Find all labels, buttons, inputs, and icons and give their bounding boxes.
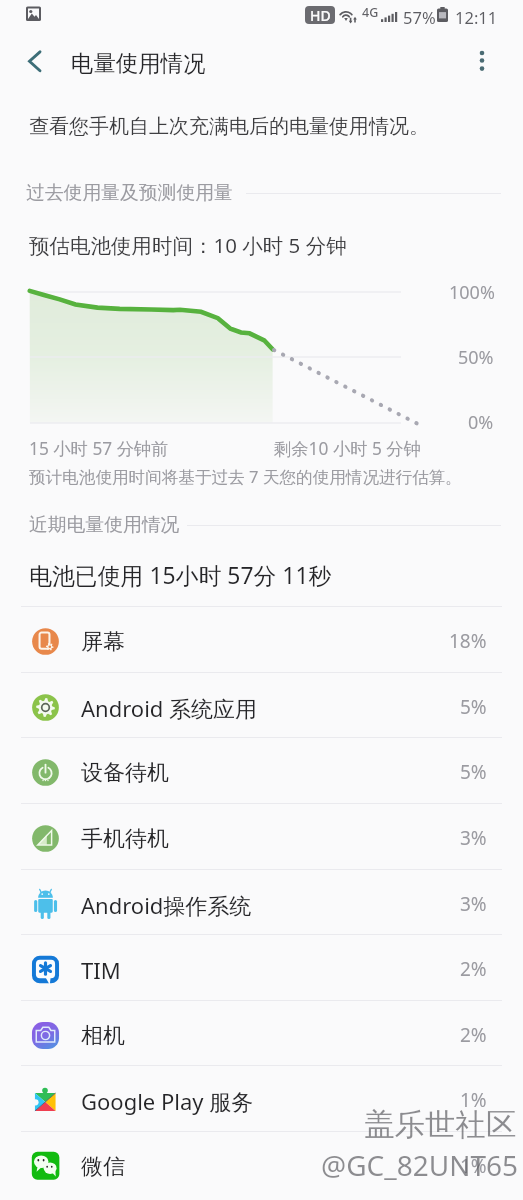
staticText: 电量使用情况 xyxy=(71,49,206,77)
staticText: 设备待机 xyxy=(81,759,169,787)
staticText: 盖乐世社区 xyxy=(364,1106,517,1144)
button[interactable]: 手机待机 xyxy=(0,803,523,869)
staticText: 剩余10 小时 5 分钟 xyxy=(274,437,421,461)
staticText: HD xyxy=(310,6,331,24)
button[interactable]: Back xyxy=(12,38,58,84)
staticText: 1% xyxy=(460,1153,487,1179)
staticText: 预估电池使用时间：10 小时 5 分钟 xyxy=(29,231,347,259)
staticText: 50% xyxy=(458,345,494,370)
staticText: 0% xyxy=(468,410,494,435)
staticText: 1% xyxy=(460,1087,487,1113)
button[interactable]: 相机 xyxy=(0,1000,523,1066)
button[interactable]: 设备待机 xyxy=(0,737,523,803)
staticText: 5% xyxy=(460,694,487,720)
staticText: 57% xyxy=(403,6,436,28)
staticText: 2% xyxy=(460,956,487,982)
staticText: Android 系统应用 xyxy=(81,693,258,723)
button[interactable]: Android 系统应用 xyxy=(0,672,523,738)
staticText: 预计电池使用时间将基于过去 7 天您的使用情况进行估算。 xyxy=(29,465,462,488)
staticText: 屏幕 xyxy=(81,628,125,656)
staticText: 18% xyxy=(449,628,487,654)
staticText: 12:11 xyxy=(455,6,498,28)
staticText: 15 小时 57 分钟前 xyxy=(29,437,169,461)
staticText: 2% xyxy=(460,1022,487,1048)
button[interactable]: Google Play 服务 xyxy=(0,1065,523,1131)
button[interactable]: TIM xyxy=(0,934,523,1000)
button[interactable]: Android操作系统 xyxy=(0,869,523,935)
staticText: 相机 xyxy=(81,1022,125,1050)
staticText: 100% xyxy=(449,280,495,305)
staticText: 过去使用量及预测使用量 xyxy=(26,181,233,205)
staticText: Google Play 服务 xyxy=(81,1086,254,1116)
staticText: 查看您手机自上次充满电后的电量使用情况。 xyxy=(29,114,429,139)
staticText: 近期电量使用情况 xyxy=(29,513,180,537)
staticText: 3% xyxy=(460,825,487,851)
button[interactable]: 屏幕 xyxy=(0,606,523,672)
staticText: TIM xyxy=(81,955,121,985)
staticText: 微信 xyxy=(81,1153,125,1181)
staticText: @GC_82UNT65 xyxy=(321,1146,519,1184)
staticText: Android操作系统 xyxy=(81,890,252,920)
button[interactable]: More options xyxy=(459,38,505,84)
staticText: 手机待机 xyxy=(81,825,169,853)
staticText: 3% xyxy=(460,891,487,917)
staticText: 5% xyxy=(460,759,487,785)
staticText: 4G xyxy=(362,4,379,21)
button[interactable]: 微信 xyxy=(0,1131,523,1197)
staticText: 电池已使用 15小时 57分 11秒 xyxy=(29,560,332,591)
